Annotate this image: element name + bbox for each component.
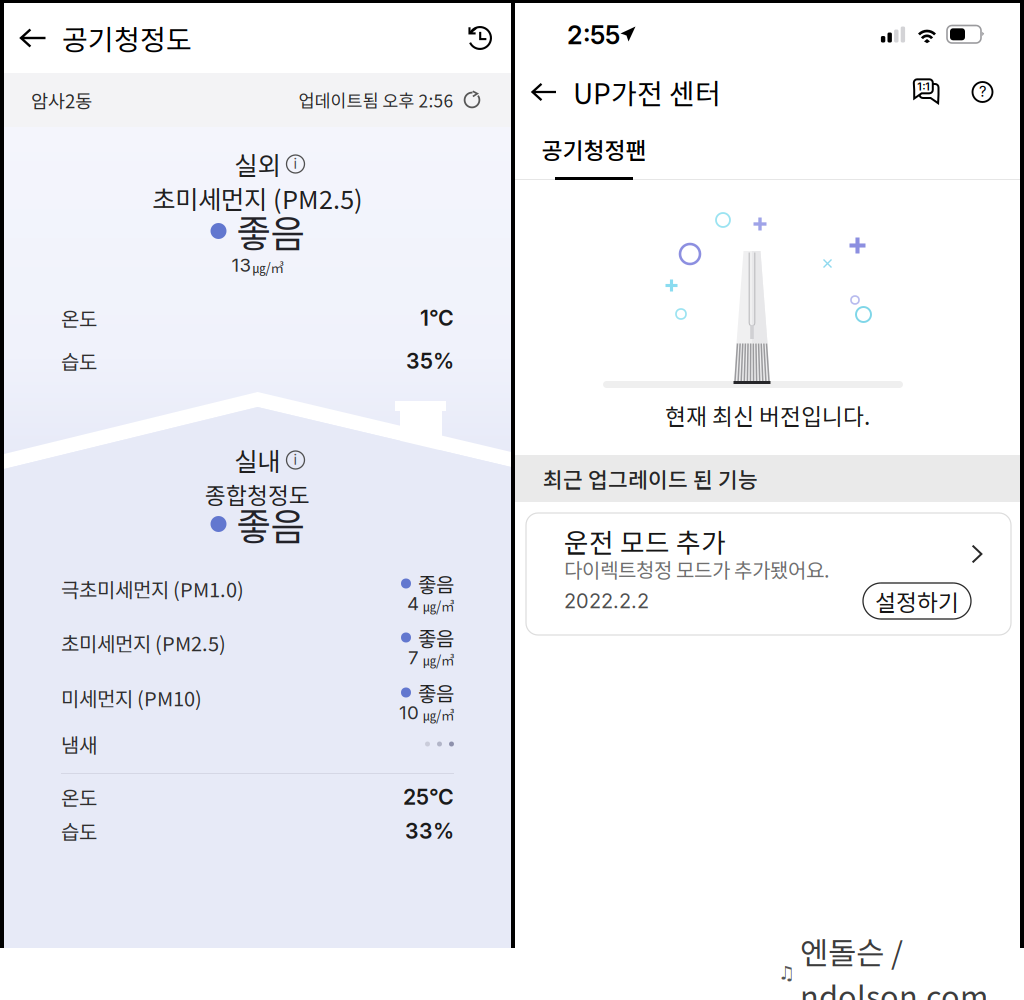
- staticText: ?: [979, 83, 986, 100]
- button[interactable]: Back: [515, 59, 573, 125]
- staticText: 실외: [234, 146, 280, 182]
- button[interactable]: Back: [4, 3, 62, 73]
- staticText: 운전 모드 추가: [564, 522, 726, 560]
- staticText: 좋음: [236, 497, 304, 551]
- button[interactable]: History: [449, 3, 511, 73]
- staticText: 현재 최신 버전입니다.: [665, 399, 870, 431]
- staticText: 극초미세먼지 (PM1.0): [61, 574, 244, 603]
- staticText: 설정하기: [875, 585, 959, 617]
- staticText: 1:1: [917, 80, 930, 93]
- staticText: ㎍/㎥: [252, 257, 283, 277]
- staticText: 10: [399, 701, 419, 724]
- staticText: 4: [407, 592, 419, 615]
- staticText: 습도: [61, 816, 97, 845]
- staticText: 공기청정팬: [541, 133, 646, 165]
- staticText: 13: [231, 254, 251, 276]
- staticText: 엔돌슨 / ndolson.com: [800, 929, 988, 1000]
- staticText: ♫: [778, 962, 795, 984]
- staticText: 7: [408, 646, 419, 669]
- staticText: 습도: [61, 346, 97, 375]
- staticText: 종합청정도: [205, 478, 310, 510]
- button[interactable]: Help: [957, 59, 1020, 125]
- staticText: ㎍/㎥: [423, 705, 454, 724]
- staticText: 최근 업그레이드 된 기능: [543, 463, 758, 494]
- staticText: 미세먼지 (PM10): [61, 683, 202, 712]
- staticText: ㎍/㎥: [423, 596, 454, 615]
- staticText: 2022.2.2: [564, 589, 649, 613]
- staticText: ㎍/㎥: [423, 650, 454, 669]
- staticText: 냄새: [61, 729, 97, 758]
- staticText: i: [293, 451, 297, 468]
- button[interactable]: Refresh: [450, 78, 494, 122]
- staticText: UP가전 센터: [573, 72, 721, 112]
- staticText: 온도: [61, 782, 97, 811]
- staticText: 좋음: [418, 623, 454, 652]
- staticText: 좋음: [418, 569, 454, 598]
- staticText: 35%: [406, 348, 454, 374]
- staticText: 33%: [405, 818, 454, 844]
- staticText: i: [293, 155, 297, 172]
- staticText: 25°C: [403, 784, 454, 810]
- staticText: 실내: [234, 442, 280, 478]
- button[interactable]: 운전 모드 추가: [526, 513, 1011, 635]
- staticText: 온도: [61, 303, 97, 332]
- staticText: 1°C: [420, 305, 454, 331]
- staticText: 업데이트됨 오후 2:56: [298, 87, 453, 113]
- staticText: 초미세먼지 (PM2.5): [152, 180, 363, 216]
- staticText: 초미세먼지 (PM2.5): [61, 628, 226, 657]
- staticText: 공기청정도: [62, 18, 192, 58]
- staticText: 암사2동: [31, 86, 92, 113]
- button[interactable]: 공기청정팬: [539, 132, 649, 180]
- button[interactable]: One to one chat: [896, 59, 957, 125]
- staticText: 좋음: [418, 678, 454, 707]
- staticText: 2:55: [567, 20, 620, 50]
- staticText: 다이렉트청정 모드가 추가됐어요.: [564, 554, 830, 583]
- staticText: 좋음: [236, 204, 304, 258]
